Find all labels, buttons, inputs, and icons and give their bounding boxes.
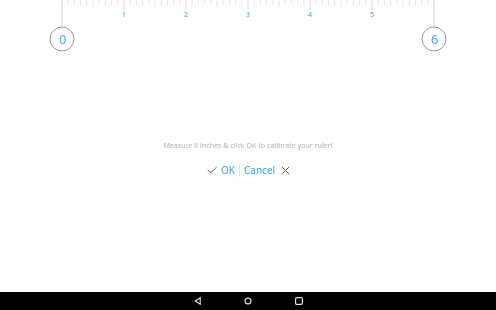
button[interactable]: Back	[180, 292, 216, 310]
staticText: 1	[122, 10, 127, 20]
staticText: 6	[431, 30, 439, 48]
staticText: 3	[246, 10, 251, 20]
staticText: Cancel	[244, 163, 276, 177]
staticText: 4	[308, 10, 313, 20]
button[interactable]: Cancel	[242, 161, 292, 179]
button[interactable]: Home	[230, 292, 266, 310]
button[interactable]: Move ruler end handle	[423, 27, 447, 51]
staticText: 5	[370, 10, 375, 20]
staticText: 0	[59, 30, 67, 48]
button[interactable]: Move ruler start handle	[51, 27, 75, 51]
staticText: 2	[184, 10, 189, 20]
button[interactable]: OK	[205, 161, 237, 179]
staticText: Measure 6 inches & click OK to calibrate…	[163, 140, 333, 150]
staticText: OK	[221, 163, 235, 177]
button[interactable]: Recent apps	[281, 292, 317, 310]
